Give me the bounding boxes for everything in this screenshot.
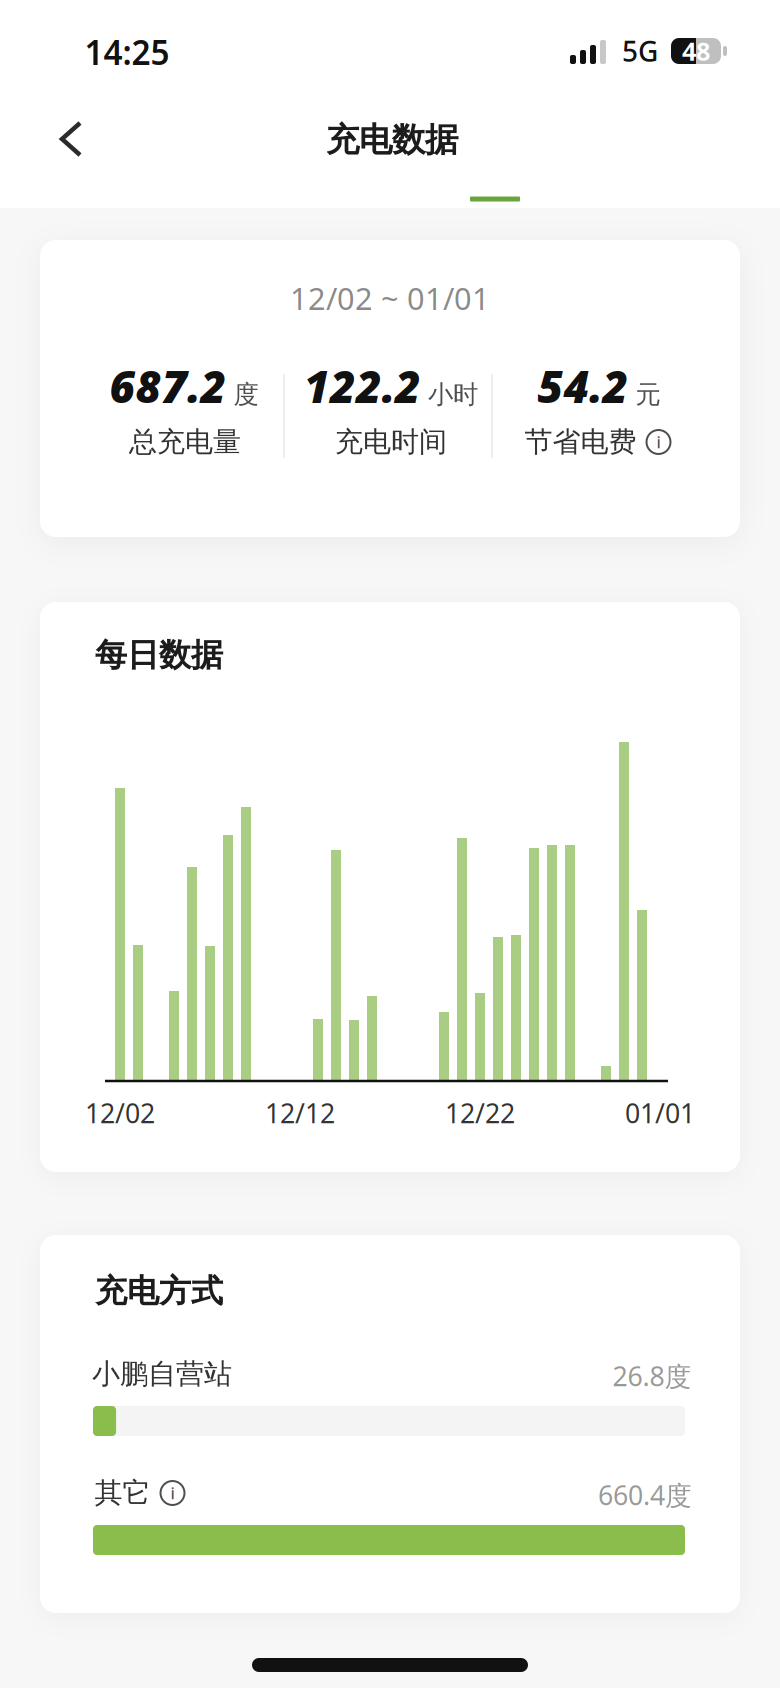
- staticText: 小鹏自营站: [92, 1357, 232, 1391]
- staticText: 12/22: [445, 1095, 515, 1131]
- staticText: 其它: [94, 1476, 150, 1510]
- staticText: 元: [635, 379, 660, 410]
- staticText: 122.2: [304, 357, 421, 415]
- staticText: 充电方式: [95, 1271, 223, 1311]
- staticText: 充电数据: [326, 119, 458, 160]
- staticText: 小时: [428, 379, 478, 410]
- staticText: 度: [233, 379, 258, 410]
- staticText: 48: [682, 34, 710, 68]
- staticText: 总充电量: [129, 425, 241, 459]
- staticText: 12/12: [265, 1095, 335, 1131]
- button[interactable]: 其它说明: [159, 1480, 185, 1506]
- button[interactable]: Back: [40, 109, 100, 169]
- staticText: i: [656, 431, 660, 453]
- staticText: 充电时间: [335, 425, 447, 459]
- staticText: 5G: [622, 32, 658, 70]
- staticText: 687.2: [109, 357, 226, 415]
- staticText: 14:25: [84, 30, 169, 74]
- staticText: 节省电费: [524, 425, 636, 459]
- button[interactable]: 节省电费说明: [645, 429, 671, 455]
- staticText: 01/01: [625, 1095, 695, 1131]
- staticText: 660.4度: [598, 1477, 692, 1513]
- staticText: 12/02: [85, 1095, 155, 1131]
- staticText: 每日数据: [95, 635, 223, 675]
- staticText: 12/02 ~ 01/01: [290, 278, 490, 318]
- staticText: i: [170, 1482, 174, 1504]
- staticText: 26.8度: [612, 1358, 691, 1394]
- staticText: 54.2: [537, 357, 628, 415]
